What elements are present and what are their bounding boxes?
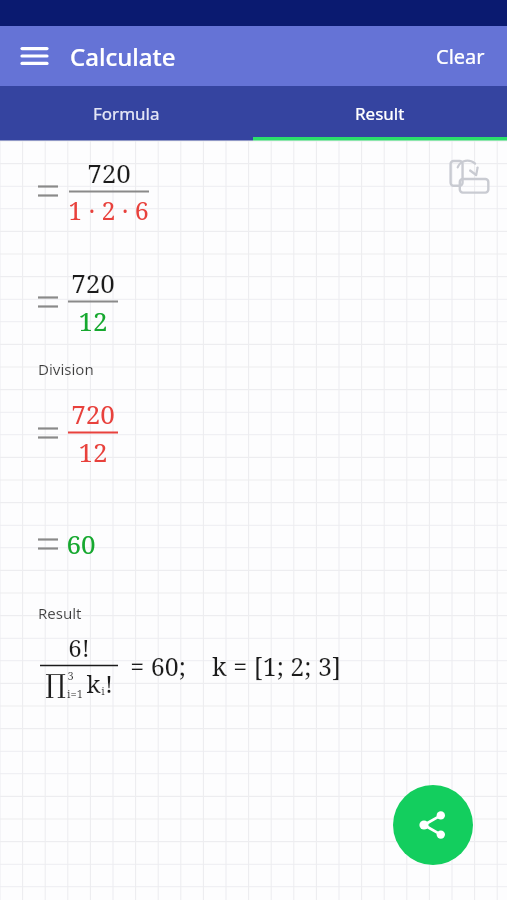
staticText: !	[105, 667, 113, 700]
staticText: 12	[78, 434, 108, 469]
staticText: 60	[66, 526, 96, 561]
button[interactable]: Result	[253, 86, 507, 141]
staticText: i=1	[67, 686, 83, 701]
staticText: Result	[355, 102, 405, 125]
staticText: = 60;	[130, 649, 186, 683]
staticText: Result	[38, 603, 82, 623]
staticText: i	[101, 683, 105, 698]
staticText: Calculate	[70, 40, 176, 73]
staticText: 3	[67, 668, 74, 683]
button[interactable]: Rotate screen	[437, 147, 501, 211]
staticText: 6!	[68, 631, 90, 664]
staticText: Division	[38, 359, 94, 379]
staticText: 12	[78, 303, 108, 338]
staticText: 1 · 2 · 6	[68, 193, 149, 227]
staticText: ∏	[45, 669, 66, 699]
button[interactable]: Share result	[393, 785, 473, 865]
staticText: 720	[87, 155, 131, 190]
button[interactable]: Clear	[430, 35, 491, 78]
button[interactable]: Formula	[0, 86, 253, 141]
staticText: Formula	[93, 102, 160, 125]
staticText: k	[86, 667, 101, 700]
staticText: 720	[71, 396, 115, 431]
button[interactable]: Open navigation menu	[6, 28, 62, 84]
staticText: Clear	[436, 43, 485, 70]
staticText: 720	[71, 265, 115, 300]
staticText: k = [1; 2; 3]	[212, 649, 341, 683]
